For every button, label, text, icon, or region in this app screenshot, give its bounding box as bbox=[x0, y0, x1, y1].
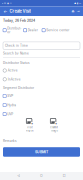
button[interactable]: Search by Name bbox=[3, 52, 80, 58]
button[interactable]: SUBMIT bbox=[3, 147, 80, 157]
button[interactable]: Account bbox=[70, 6, 75, 16]
staticText: ⇥ bbox=[76, 9, 79, 13]
staticText: Active bbox=[8, 69, 18, 72]
button[interactable]: Back bbox=[15, 172, 23, 179]
staticText: Create Visit bbox=[9, 9, 30, 14]
button[interactable]: Visit Report bbox=[21, 118, 39, 132]
button[interactable]: Back bbox=[2, 6, 8, 16]
button[interactable]: InActive bbox=[3, 77, 80, 81]
staticText: ◓ bbox=[71, 9, 74, 13]
button[interactable]: Dealer bbox=[23, 28, 42, 32]
staticText: + bbox=[31, 121, 33, 125]
button[interactable]: Recent apps bbox=[60, 172, 68, 179]
staticText: Remarks bbox=[3, 139, 17, 143]
button[interactable]: Counter Image bbox=[45, 118, 63, 132]
button[interactable]: UVP bbox=[3, 112, 80, 116]
staticText: Visit bbox=[27, 126, 33, 129]
staticText: ▲ ▮ ▭ bbox=[74, 2, 81, 5]
staticText: Dealer bbox=[28, 28, 38, 32]
staticText: UVP bbox=[7, 112, 13, 116]
staticText: + bbox=[55, 121, 57, 125]
button[interactable]: Log out bbox=[75, 6, 80, 16]
staticText: ▪ ✉ ◉ ▫ bbox=[2, 2, 12, 5]
button[interactable]: Check in Time bbox=[3, 42, 80, 49]
button[interactable]: Distributor bbox=[3, 27, 23, 34]
staticText: Distributor bbox=[7, 27, 21, 34]
staticText: ← bbox=[3, 8, 7, 14]
staticText: ○ bbox=[40, 174, 43, 178]
button[interactable]: Hydra bbox=[3, 103, 80, 107]
button[interactable]: Active bbox=[3, 69, 80, 72]
staticText: Report bbox=[26, 129, 34, 132]
staticText: Search by Name bbox=[3, 52, 29, 55]
staticText: Today, 26 Feb 2024 bbox=[3, 18, 35, 22]
staticText: □ bbox=[63, 174, 66, 178]
button[interactable]: Service center bbox=[42, 28, 78, 32]
staticText: Distributor Status bbox=[3, 61, 30, 65]
staticText: Check in Time bbox=[5, 44, 28, 47]
staticText: InActive bbox=[8, 77, 21, 81]
staticText: Image bbox=[50, 129, 57, 132]
staticText: SUBMIT bbox=[35, 150, 48, 154]
staticText: Hydra bbox=[7, 103, 16, 107]
button[interactable]: SVP bbox=[3, 94, 80, 98]
staticText: ◁ bbox=[17, 174, 20, 178]
staticText: Service center bbox=[46, 28, 69, 32]
staticText: SVP bbox=[7, 94, 13, 98]
button[interactable]: Home bbox=[37, 172, 45, 179]
staticText: Counter bbox=[50, 126, 58, 129]
staticText: Segment Distributor bbox=[3, 86, 34, 90]
